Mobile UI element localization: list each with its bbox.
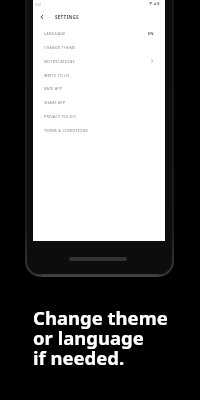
button[interactable]: Back <box>37 12 47 22</box>
button[interactable]: TERMS & CONDITIONS <box>33 123 165 137</box>
staticText: TERMS & CONDITIONS <box>44 128 89 133</box>
staticText: LANGUAGE <box>44 31 66 36</box>
button[interactable]: WRITE TO US <box>33 68 165 82</box>
staticText: SHARE APP <box>44 100 66 105</box>
staticText: EN <box>148 31 154 36</box>
staticText: Change theme or language if needed. <box>33 305 168 370</box>
staticText: PRIVACY POLICY <box>44 114 76 119</box>
staticText: NOTIFICATIONS <box>44 59 75 64</box>
staticText: SETTINGS <box>55 14 79 20</box>
button[interactable]: NOTIFICATIONS <box>33 54 165 68</box>
button[interactable]: RATE APP <box>33 81 165 95</box>
staticText: 9:41 <box>35 2 42 7</box>
button[interactable]: CHANGE THEME <box>33 40 165 54</box>
button[interactable]: PRIVACY POLICY <box>33 109 165 123</box>
staticText: CHANGE THEME <box>44 45 76 50</box>
button[interactable]: LANGUAGE <box>33 26 165 40</box>
staticText: WRITE TO US <box>44 73 70 78</box>
staticText: RATE APP <box>44 86 63 91</box>
button[interactable]: SHARE APP <box>33 95 165 109</box>
